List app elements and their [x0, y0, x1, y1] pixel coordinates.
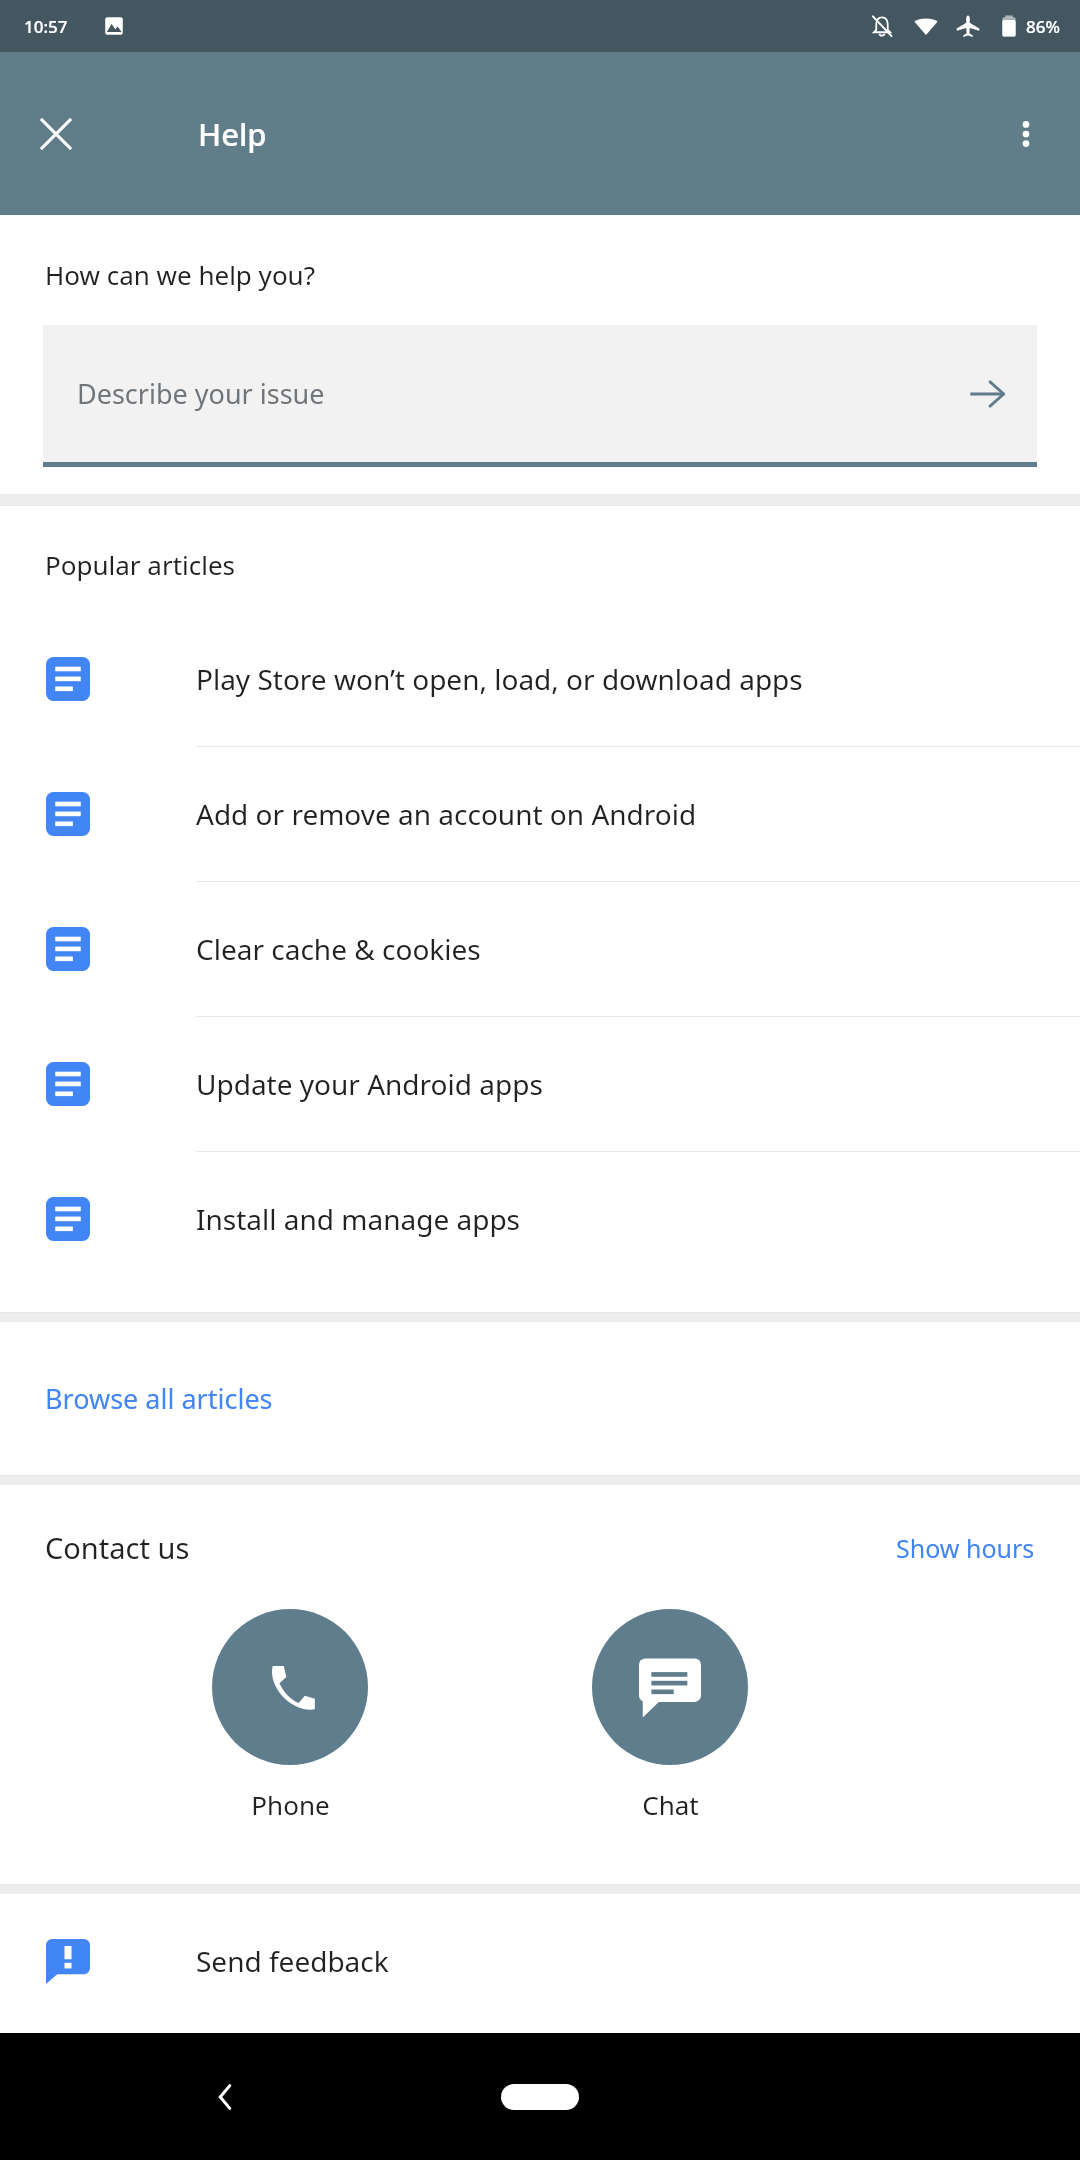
button[interactable]: More options [990, 98, 1062, 170]
staticText: Help [198, 113, 267, 155]
staticText: Phone [251, 1787, 330, 1822]
button[interactable]: Show hours [896, 1531, 1035, 1565]
staticText: Play Store won’t open, load, or download… [196, 660, 803, 698]
button[interactable]: Add or remove an account on Android [0, 747, 1080, 881]
staticText: Send feedback [196, 1942, 389, 1980]
staticText: Clear cache & cookies [196, 930, 481, 968]
button[interactable]: Clear cache & cookies [0, 882, 1080, 1016]
button[interactable]: Browse all articles [0, 1322, 1080, 1475]
button[interactable]: Update your Android apps [0, 1017, 1080, 1151]
staticText: Contact us [45, 1528, 190, 1567]
staticText: Popular articles [45, 547, 236, 582]
staticText: Add or remove an account on Android [196, 795, 697, 833]
staticText: 10:57 [24, 15, 68, 38]
staticText: Update your Android apps [196, 1065, 543, 1103]
staticText: Show hours [896, 1531, 1035, 1565]
staticText: Describe your issue [77, 375, 325, 412]
button[interactable]: Describe your issue [43, 325, 1037, 462]
staticText: Chat [642, 1787, 699, 1822]
button[interactable]: Chat [520, 1609, 820, 1822]
button[interactable]: Send feedback [0, 1894, 1080, 2028]
button[interactable]: Back [190, 2062, 260, 2132]
staticText: How can we help you? [45, 257, 315, 292]
button[interactable]: Search [957, 364, 1017, 424]
button[interactable]: Install and manage apps [0, 1152, 1080, 1286]
staticText: Install and manage apps [196, 1200, 521, 1238]
staticText: Browse all articles [45, 1380, 273, 1417]
staticText: 86% [1026, 15, 1060, 38]
button[interactable]: Play Store won’t open, load, or download… [0, 612, 1080, 746]
button[interactable]: Close [20, 98, 92, 170]
button[interactable]: Home [501, 2084, 579, 2110]
button[interactable]: Phone [140, 1609, 440, 1822]
